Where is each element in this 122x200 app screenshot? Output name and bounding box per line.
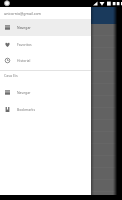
button[interactable]: Navegar [0,84,91,101]
staticText: Navegar [17,90,31,95]
button[interactable]: Favoritos [0,36,91,53]
staticText: Historial [17,58,31,63]
staticText: Navegar [17,25,31,30]
button[interactable]: Navegar [0,19,91,36]
staticText: Bookmarks [17,107,36,112]
staticText: Favoritos [17,42,32,47]
staticText: Casa Eis [4,73,18,78]
staticText: unicornio@gmail.com [4,11,41,16]
button[interactable]: Bookmarks [0,101,91,118]
button[interactable]: Historial [0,52,91,69]
